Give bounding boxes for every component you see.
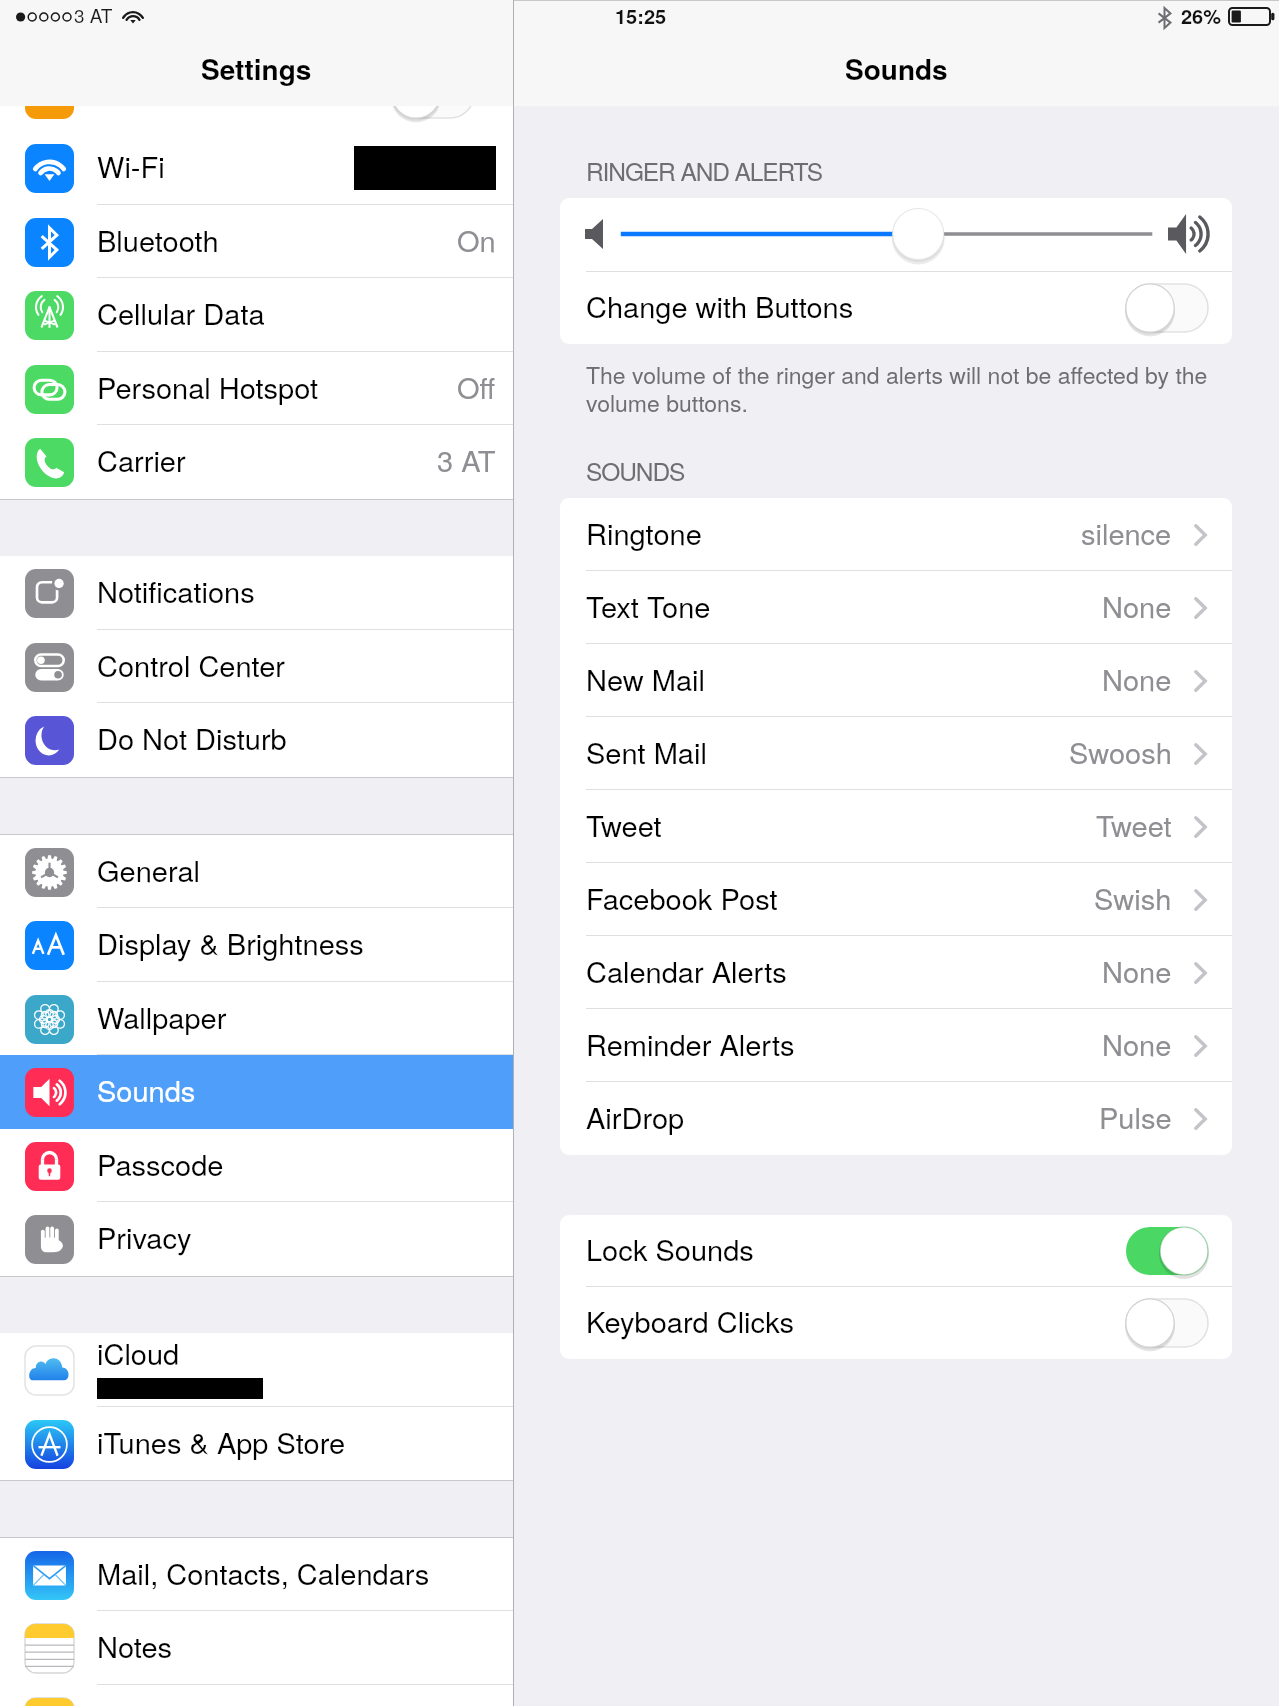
button[interactable]: Tweet (560, 790, 1232, 863)
staticText: iTunes & App Store (97, 1421, 346, 1463)
staticText: Sent Mail (586, 731, 707, 773)
staticText: None (1102, 585, 1172, 627)
staticText: Sounds (845, 48, 948, 88)
button[interactable]: Lock Sounds (560, 1215, 1232, 1287)
staticText: RINGER AND ALERTS (586, 153, 823, 188)
button[interactable]: Wi-Fi (0, 131, 513, 205)
staticText: Passcode (97, 1143, 224, 1185)
button[interactable]: Keyboard Clicks (560, 1287, 1232, 1359)
staticText: None (1102, 950, 1172, 992)
button[interactable]: Personal Hotspot (0, 352, 513, 426)
button[interactable]: Bluetooth (0, 205, 513, 279)
staticText: Text Tone (586, 585, 711, 627)
staticText: General (97, 849, 201, 891)
staticText: 15:25 (615, 1, 667, 30)
button[interactable]: General (0, 835, 513, 909)
button[interactable]: iTunes & App Store (0, 1407, 513, 1481)
staticText: Settings (201, 48, 312, 88)
staticText: Calendar Alerts (586, 950, 787, 992)
staticText: 26% (1181, 1, 1222, 30)
button[interactable]: iCloud (0, 1333, 513, 1407)
staticText: Privacy (97, 1216, 192, 1258)
button[interactable]: Control Center (0, 630, 513, 704)
staticText: None (1102, 658, 1172, 700)
button[interactable]: Reminders (0, 1685, 513, 1706)
button[interactable]: Sent Mail (560, 717, 1232, 790)
other: Keyboard Clicks off (1126, 1298, 1208, 1348)
staticText: silence (1081, 512, 1172, 554)
button[interactable]: Mail, Contacts, Calendars (0, 1538, 513, 1612)
staticText: Wallpaper (97, 996, 227, 1038)
button[interactable]: Wallpaper (0, 982, 513, 1056)
button[interactable]: Facebook Post (560, 863, 1232, 936)
staticText: Notifications (97, 570, 255, 612)
button[interactable]: Reminder Alerts (560, 1009, 1232, 1082)
button[interactable]: Do Not Disturb (0, 703, 513, 777)
button[interactable]: Privacy (0, 1202, 513, 1276)
staticText: Off (457, 366, 496, 408)
staticText: The volume of the ringer and alerts will… (586, 358, 1214, 419)
button[interactable]: Notifications (0, 556, 513, 630)
button[interactable]: Calendar Alerts (560, 936, 1232, 1009)
staticText: Change with Buttons (586, 285, 854, 327)
staticText: Do Not Disturb (97, 717, 287, 759)
staticText: iCloud (97, 1332, 180, 1374)
staticText: Ringtone (586, 512, 702, 554)
button[interactable]: Display & Brightness (0, 908, 513, 982)
button[interactable]: Ringer volume (560, 198, 1232, 272)
staticText: Tweet (1096, 804, 1172, 846)
button[interactable]: Carrier (0, 425, 513, 499)
staticText: Mail, Contacts, Calendars (97, 1552, 430, 1594)
staticText: Tweet (586, 804, 662, 846)
staticText: AirDrop (586, 1096, 685, 1138)
staticText: None (1102, 1023, 1172, 1065)
staticText: Carrier (97, 439, 186, 481)
staticText: Lock Sounds (586, 1228, 754, 1270)
staticText: Pulse (1099, 1096, 1172, 1138)
button[interactable]: Ringtone (560, 498, 1232, 571)
staticText: Reminder Alerts (586, 1023, 795, 1065)
button[interactable]: Notes (0, 1611, 513, 1685)
button[interactable]: Text Tone (560, 571, 1232, 644)
other: Change with Buttons off (1126, 283, 1208, 333)
staticText: On (457, 219, 496, 261)
button[interactable]: Passcode (0, 1129, 513, 1203)
staticText: SOUNDS (586, 453, 685, 488)
staticText: Swoosh (1069, 731, 1172, 773)
button[interactable]: Airplane Mode off (0, 58, 513, 132)
staticText: Personal Hotspot (97, 366, 319, 408)
staticText: Keyboard Clicks (586, 1300, 795, 1342)
staticText: Control Center (97, 644, 285, 686)
staticText: Display & Brightness (97, 922, 364, 964)
staticText: Bluetooth (97, 219, 219, 261)
button[interactable]: Change with Buttons (560, 272, 1232, 344)
button[interactable]: Sounds (0, 1055, 513, 1129)
staticText: Cellular Data (97, 292, 265, 334)
staticText: Facebook Post (586, 877, 778, 919)
other: Airplane Mode off (392, 69, 474, 119)
other: Lock Sounds on (1126, 1226, 1208, 1276)
staticText: 3 AT (74, 1, 113, 28)
staticText: Swish (1094, 877, 1172, 919)
staticText: Notes (97, 1625, 173, 1667)
staticText: New Mail (586, 658, 705, 700)
staticText: Wi-Fi (97, 145, 165, 187)
button[interactable]: AirDrop (560, 1082, 1232, 1155)
staticText: 3 AT (437, 439, 496, 481)
button[interactable]: New Mail (560, 644, 1232, 717)
staticText: Sounds (97, 1069, 196, 1111)
button[interactable]: Cellular Data (0, 278, 513, 352)
